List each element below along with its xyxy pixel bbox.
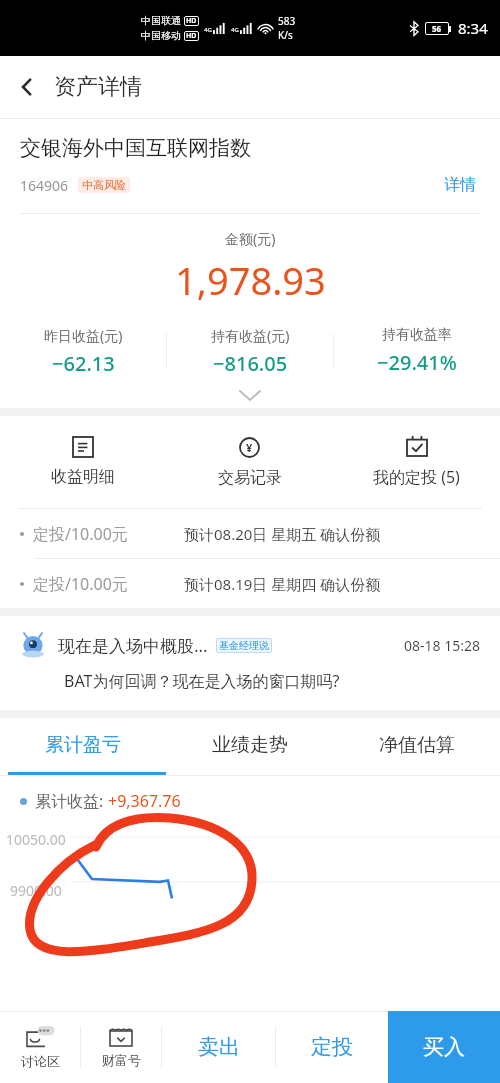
button[interactable]: 定投/10.00元 — [0, 509, 500, 558]
staticText: HD — [186, 16, 197, 26]
staticText: 中国移动 — [141, 29, 181, 42]
button[interactable]: 讨论区 — [0, 1011, 80, 1083]
button[interactable]: 昨日收益(元) — [0, 326, 166, 377]
staticText: 卖出 — [198, 1034, 240, 1060]
staticText: 4G — [231, 26, 239, 34]
staticText: 讨论区 — [21, 1053, 60, 1069]
staticText: 现在是入场中概股... — [58, 634, 208, 657]
staticText: 业绩走势 — [212, 733, 288, 757]
button[interactable]: 买入 — [388, 1011, 500, 1083]
staticText: 财富号 — [102, 1052, 141, 1068]
staticText: 交易记录 — [218, 468, 282, 488]
staticText: 56 — [432, 23, 442, 34]
staticText: 定投/10.00元 — [33, 573, 128, 595]
button[interactable]: 持有收益(元) — [167, 326, 333, 377]
staticText: 4G — [204, 26, 212, 34]
staticText: 1,978.93 — [175, 254, 326, 306]
staticText: 昨日收益(元) — [44, 326, 123, 345]
staticText: +9,367.76 — [108, 790, 181, 812]
staticText: 累计盈亏 — [45, 733, 121, 757]
staticText: 中高风险 — [82, 178, 126, 192]
staticText: 中国联通 — [141, 14, 181, 27]
staticText: 定投 — [311, 1034, 353, 1060]
button[interactable]: 累计盈亏 — [0, 718, 166, 772]
staticText: 基金经理说 — [219, 639, 269, 652]
staticText: 详情 — [444, 175, 476, 195]
button[interactable]: 收益明细 — [0, 416, 166, 508]
button[interactable]: Expand — [0, 382, 500, 408]
staticText: HD — [186, 31, 197, 41]
staticText: 金额(元) — [225, 229, 276, 248]
staticText: −62.13 — [52, 350, 115, 377]
staticText: 9900.00 — [10, 881, 62, 900]
staticText: −29.41% — [377, 349, 457, 376]
button[interactable]: 我的定投 (5) — [333, 416, 500, 508]
button[interactable]: 净值估算 — [333, 718, 500, 772]
staticText: 净值估算 — [379, 733, 455, 757]
button[interactable]: 详情 — [440, 171, 480, 199]
button[interactable]: Back — [0, 60, 54, 114]
staticText: 预计08.20日 星期五 确认份额 — [184, 524, 381, 544]
staticText: 资产详情 — [54, 73, 142, 101]
staticText: 预计08.19日 星期四 确认份额 — [184, 574, 381, 594]
button[interactable]: 业绩走势 — [166, 718, 333, 772]
staticText: 10050.00 — [6, 830, 66, 849]
staticText: 累计收益: — [35, 790, 108, 812]
button[interactable]: 定投 — [276, 1011, 388, 1083]
staticText: 我的定投 (5) — [373, 466, 460, 488]
button[interactable]: 定投/10.00元 — [0, 559, 500, 608]
staticText: 8:34 — [458, 18, 488, 38]
staticText: 持有收益(元) — [211, 326, 290, 345]
staticText: K/s — [278, 28, 293, 42]
button[interactable]: 现在是入场中概股... — [0, 616, 500, 710]
button[interactable]: 卖出 — [162, 1011, 275, 1083]
staticText: 收益明细 — [51, 467, 115, 487]
staticText: BAT为何回调？现在是入场的窗口期吗? — [64, 670, 340, 692]
staticText: −816.05 — [213, 350, 288, 377]
staticText: 交银海外中国互联网指数 — [20, 135, 251, 161]
button[interactable]: 财富号 — [81, 1011, 161, 1083]
staticText: 08-18 15:28 — [404, 636, 480, 655]
staticText: 定投/10.00元 — [33, 523, 128, 545]
staticText: ¥ — [246, 440, 253, 455]
staticText: 持有收益率 — [382, 326, 452, 344]
staticText: 买入 — [423, 1034, 465, 1060]
button[interactable]: 持有收益率 — [334, 326, 500, 376]
button[interactable]: ¥ — [166, 416, 333, 508]
staticText: 164906 — [20, 176, 69, 195]
staticText: 583 — [278, 14, 296, 28]
